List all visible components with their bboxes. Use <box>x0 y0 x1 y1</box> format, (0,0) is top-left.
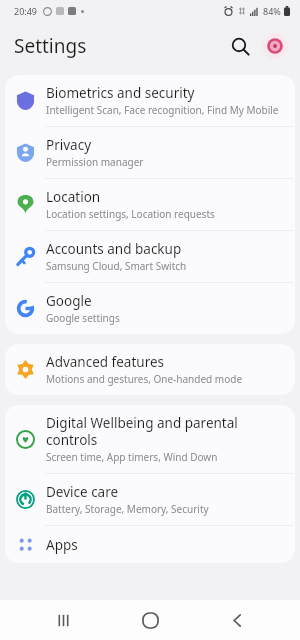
button[interactable]: Home <box>126 600 174 640</box>
button[interactable]: Account <box>258 29 292 63</box>
staticText: Intelligent Scan, Face recognition, Find… <box>46 103 279 117</box>
staticText: Device care <box>46 483 119 501</box>
button[interactable]: Biometrics and security <box>5 75 295 127</box>
staticText: Digital Wellbeing and parental controls <box>46 414 281 449</box>
button[interactable]: Location <box>5 179 295 231</box>
button[interactable]: Accounts and backup <box>5 231 295 283</box>
staticText: Google <box>46 292 92 310</box>
staticText: Biometrics and security <box>46 84 195 102</box>
staticText: Permission manager <box>46 155 144 169</box>
staticText: 84% <box>263 5 281 17</box>
button[interactable]: Advanced features <box>5 344 295 395</box>
button[interactable]: Privacy <box>5 127 295 179</box>
button[interactable]: Digital Wellbeing and parental controls <box>5 405 295 474</box>
staticText: Battery, Storage, Memory, Security <box>46 502 209 516</box>
staticText: Settings <box>14 33 87 59</box>
button[interactable]: Back <box>213 600 261 640</box>
staticText: Privacy <box>46 136 92 154</box>
button[interactable]: Google <box>5 283 295 334</box>
staticText: Google settings <box>46 311 120 325</box>
staticText: 20:49 <box>14 5 38 17</box>
staticText: Location settings, Location requests <box>46 207 215 221</box>
staticText: Motions and gestures, One-handed mode <box>46 372 243 386</box>
staticText: Samsung Cloud, Smart Switch <box>46 259 187 273</box>
button[interactable]: Apps <box>5 526 295 563</box>
staticText: Accounts and backup <box>46 240 182 258</box>
staticText: Screen time, App timers, Wind Down <box>46 450 218 464</box>
button[interactable]: Search <box>222 28 258 64</box>
staticText: Location <box>46 188 101 206</box>
button[interactable]: Recent apps <box>39 600 87 640</box>
staticText: Advanced features <box>46 353 165 371</box>
staticText: Apps <box>46 536 78 554</box>
button[interactable]: Device care <box>5 474 295 526</box>
